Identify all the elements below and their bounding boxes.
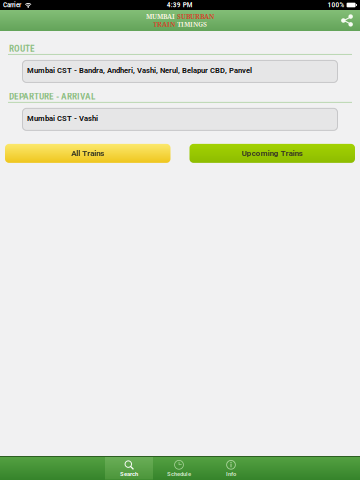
button[interactable]: Upcoming Trains — [189, 144, 355, 163]
staticText: SUBURBAN — [177, 12, 214, 21]
staticText: Mumbai CST - Bandra, Andheri, Vashi, Ner… — [27, 66, 252, 75]
staticText: MUMBAI — [146, 12, 175, 21]
staticText: Upcoming Trains — [242, 149, 303, 158]
button[interactable]: Share — [334, 10, 360, 31]
button[interactable]: Schedule — [153, 456, 205, 479]
staticText: Search — [120, 471, 138, 477]
button[interactable]: Info — [205, 456, 257, 479]
button[interactable]: All Trains — [5, 144, 170, 163]
staticText: All Trains — [71, 149, 104, 158]
staticText: Carrier — [3, 1, 21, 9]
staticText: ROUTE — [9, 43, 35, 54]
staticText: Mumbai CST - Vashi — [27, 114, 98, 123]
staticText: Schedule — [167, 471, 191, 477]
staticText: 4:39 PM — [167, 1, 193, 9]
staticText: DEPARTURE - ARRIVAL — [9, 91, 95, 102]
button[interactable]: Mumbai CST - Vashi — [22, 108, 338, 131]
button[interactable]: Search — [105, 456, 153, 479]
button[interactable]: Mumbai CST - Bandra, Andheri, Vashi, Ner… — [22, 60, 338, 83]
staticText: TIMINGS — [177, 19, 207, 29]
staticText: TRAIN — [153, 19, 175, 29]
staticText: Info — [226, 471, 236, 477]
staticText: 100% — [328, 1, 345, 9]
